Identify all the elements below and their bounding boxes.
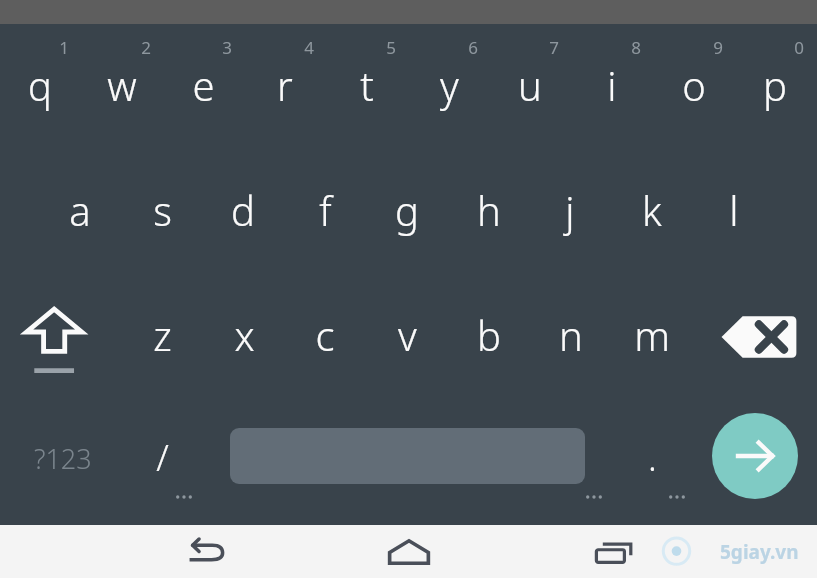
staticText: v xyxy=(398,308,417,362)
button[interactable]: h xyxy=(459,178,519,242)
staticText: r xyxy=(277,58,293,112)
staticText: h xyxy=(477,183,501,237)
staticText: 7 xyxy=(549,36,559,59)
staticText: 5giay.vn xyxy=(720,539,799,565)
button[interactable]: a xyxy=(50,178,110,242)
staticText: q xyxy=(28,58,52,112)
button[interactable]: t xyxy=(337,53,397,117)
button[interactable]: y xyxy=(419,53,479,117)
staticText: m xyxy=(634,308,670,362)
staticText: e xyxy=(192,58,215,112)
button[interactable]: q xyxy=(10,53,70,117)
button[interactable]: l xyxy=(704,178,764,242)
button[interactable]: g xyxy=(377,178,437,242)
button[interactable]: f xyxy=(295,178,355,242)
button[interactable]: w xyxy=(92,53,152,117)
staticText: . xyxy=(648,433,657,482)
staticText: s xyxy=(153,183,172,237)
staticText: j xyxy=(565,183,575,237)
button[interactable]: Recent apps xyxy=(578,525,650,578)
staticText: ?123 xyxy=(34,440,92,477)
staticText: 8 xyxy=(631,36,641,59)
staticText: c xyxy=(315,308,335,362)
button[interactable]: m xyxy=(622,303,682,367)
staticText: 3 xyxy=(222,36,232,59)
staticText: 6 xyxy=(468,36,478,59)
staticText: 0 xyxy=(794,36,804,59)
button[interactable]: e xyxy=(173,53,233,117)
button[interactable]: n xyxy=(541,303,601,367)
button[interactable]: i xyxy=(582,53,642,117)
staticText: f xyxy=(319,183,332,237)
button[interactable]: u xyxy=(500,53,560,117)
button[interactable]: k xyxy=(622,178,682,242)
button[interactable]: v xyxy=(377,303,437,367)
staticText: k xyxy=(642,183,662,237)
button[interactable]: d xyxy=(213,178,273,242)
staticText: l xyxy=(729,183,739,237)
staticText: o xyxy=(682,58,706,112)
staticText: n xyxy=(559,308,583,362)
staticText: 5 xyxy=(386,36,396,59)
staticText: 4 xyxy=(304,36,314,59)
button[interactable]: z xyxy=(132,303,192,367)
button[interactable]: Back xyxy=(168,525,240,578)
staticText: / xyxy=(156,433,169,482)
button[interactable]: r xyxy=(255,53,315,117)
staticText: g xyxy=(395,183,419,237)
button[interactable]: p xyxy=(745,53,805,117)
button[interactable]: Enter xyxy=(712,413,798,499)
button[interactable]: j xyxy=(540,178,600,242)
button[interactable]: o xyxy=(664,53,724,117)
staticText: 2 xyxy=(141,36,151,59)
button[interactable]: Backspace xyxy=(710,300,806,374)
staticText: 9 xyxy=(713,36,723,59)
button[interactable]: b xyxy=(459,303,519,367)
staticText: b xyxy=(477,308,501,362)
staticText: p xyxy=(763,58,787,112)
staticText: x xyxy=(234,308,255,362)
button[interactable]: x xyxy=(214,303,274,367)
button[interactable]: Home xyxy=(373,525,445,578)
button[interactable]: / xyxy=(132,425,192,489)
staticText: y xyxy=(440,58,459,112)
button[interactable]: s xyxy=(132,178,192,242)
staticText: a xyxy=(69,183,91,237)
staticText: d xyxy=(231,183,255,237)
staticText: u xyxy=(518,58,542,112)
staticText: t xyxy=(360,58,374,112)
staticText: z xyxy=(153,308,172,362)
button[interactable]: ?123 xyxy=(10,425,115,491)
button[interactable]: Shift xyxy=(10,295,102,383)
button[interactable]: c xyxy=(295,303,355,367)
button[interactable]: . xyxy=(622,425,682,489)
staticText: i xyxy=(607,58,617,112)
staticText: 1 xyxy=(59,36,69,59)
staticText: w xyxy=(107,58,137,112)
